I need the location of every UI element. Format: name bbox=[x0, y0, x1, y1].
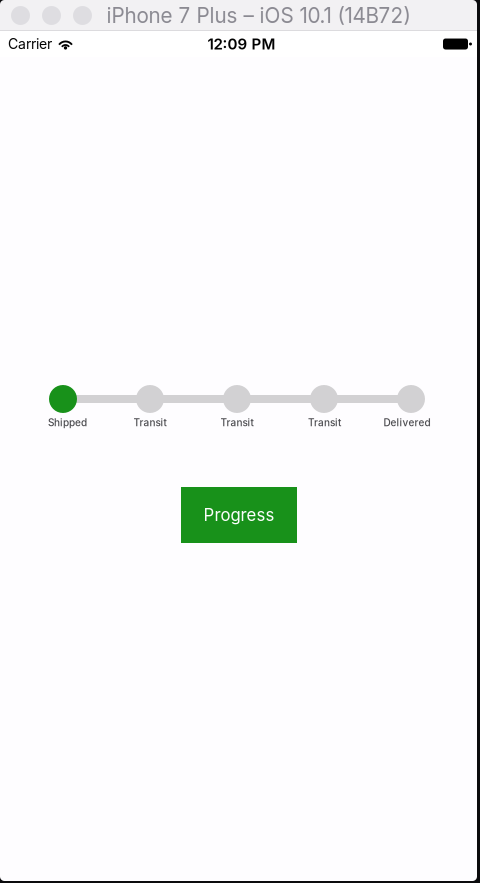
staticText: Transit bbox=[220, 416, 253, 429]
button[interactable]: Close bbox=[11, 6, 30, 25]
button[interactable]: Minimize bbox=[42, 6, 61, 25]
button[interactable]: Zoom bbox=[73, 6, 92, 25]
staticText: Transit bbox=[308, 416, 341, 429]
staticText: 12:09 PM bbox=[207, 35, 275, 53]
staticText: Carrier bbox=[8, 35, 52, 52]
staticText: Delivered bbox=[383, 416, 430, 429]
staticText: Shipped bbox=[48, 416, 87, 429]
button[interactable]: Progress bbox=[181, 487, 297, 543]
staticText: Transit bbox=[133, 416, 166, 429]
staticText: iPhone 7 Plus – iOS 10.1 (14B72) bbox=[106, 3, 410, 28]
staticText: Progress bbox=[203, 505, 274, 525]
